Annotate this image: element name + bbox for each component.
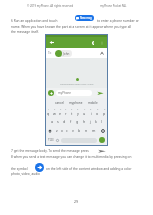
staticText: g <box>76 119 79 124</box>
button[interactable]: Shift <box>48 129 52 133</box>
staticText: on the left side of the content window a… <box>46 167 132 171</box>
button[interactable]: Emoji <box>56 139 59 142</box>
staticText: conversation with MMS / Pass <box>60 82 94 85</box>
button[interactable]: a <box>51 119 54 124</box>
staticText: New msg <box>80 16 92 20</box>
staticText: 4 <box>65 108 67 111</box>
button[interactable]: d <box>63 119 66 124</box>
button[interactable]: 6 <box>77 108 79 116</box>
staticText: f <box>70 119 72 124</box>
staticText: 0 <box>104 108 106 111</box>
other: Call <box>92 41 96 45</box>
staticText: e <box>59 111 62 116</box>
staticText: 6 Run an application and touch <box>11 19 58 23</box>
staticText: k <box>95 119 97 124</box>
button[interactable]: Attach <box>48 90 54 96</box>
button[interactable]: n <box>85 128 88 133</box>
button[interactable]: h <box>83 119 86 124</box>
button[interactable]: mobile <box>88 101 98 105</box>
button[interactable]: myphone <box>69 101 83 105</box>
button[interactable]: cancel <box>55 101 64 105</box>
staticText: © 2019 myPhone. All rights reserved <box>27 4 74 8</box>
staticText: name. When you have known the part at a … <box>11 25 132 29</box>
button[interactable]: ?123 <box>48 138 54 142</box>
button[interactable]: l <box>101 119 102 124</box>
button[interactable]: 9 <box>96 108 99 116</box>
staticText: l <box>101 119 102 124</box>
staticText: i <box>91 111 92 116</box>
button[interactable]: b <box>78 128 81 133</box>
staticText: s <box>57 119 59 124</box>
other: More options <box>100 41 104 45</box>
button[interactable]: 5 <box>71 108 73 116</box>
button[interactable]: c <box>66 128 68 133</box>
button[interactable]: v <box>72 128 74 133</box>
button[interactable]: 8 <box>90 108 92 116</box>
staticText: r <box>65 111 67 116</box>
button[interactable]: Backspace <box>101 129 105 133</box>
staticText: 3 <box>60 108 62 111</box>
button[interactable]: 2 <box>53 108 56 116</box>
button[interactable]: 1 <box>47 108 50 116</box>
staticText: 8 when you send a text message you can c… <box>11 155 132 159</box>
other: Back <box>49 40 54 45</box>
button[interactable]: g <box>76 119 79 124</box>
button[interactable]: f <box>70 119 72 124</box>
button[interactable]: New message <box>75 15 94 21</box>
staticText: to enter a phone number or <box>97 19 139 23</box>
staticText: o <box>96 111 99 116</box>
staticText: 6 <box>77 108 79 111</box>
button[interactable]: z <box>56 128 58 133</box>
button[interactable]: k <box>95 119 97 124</box>
staticText: a <box>51 119 54 124</box>
button[interactable]: s <box>57 119 59 124</box>
staticText: John <box>63 52 70 56</box>
staticText: photo, video, audio <box>11 172 40 176</box>
other: Add contact <box>100 51 105 56</box>
staticText: 1 <box>48 108 50 111</box>
staticText: 2 <box>54 108 56 111</box>
staticText: 5 <box>71 108 73 111</box>
staticText: j <box>90 119 91 124</box>
staticText: 8 <box>90 108 92 111</box>
staticText: p <box>103 111 106 116</box>
staticText: To <box>48 51 52 55</box>
button[interactable]: Enter <box>99 137 105 143</box>
staticText: u <box>83 111 86 116</box>
staticText: w <box>53 111 56 116</box>
button[interactable]: 7 <box>83 108 86 116</box>
button[interactable]: j <box>90 119 91 124</box>
staticText: d <box>63 119 66 124</box>
staticText: y <box>77 111 79 116</box>
button[interactable]: Send <box>97 90 104 97</box>
staticText: h <box>83 119 86 124</box>
staticText: myPhone Pocket PAL <box>100 4 127 8</box>
staticText: q <box>47 111 50 116</box>
staticText: 29 <box>74 199 79 204</box>
button[interactable]: x <box>61 128 63 133</box>
staticText: 9 <box>97 108 99 111</box>
staticText: t <box>71 111 73 116</box>
staticText: 7 get the message body. To send the mess… <box>11 149 89 153</box>
staticText: 7 <box>84 108 86 111</box>
button[interactable]: m <box>92 128 96 133</box>
staticText: the symbol <box>11 167 28 171</box>
staticText: the message itself. <box>11 30 39 34</box>
button[interactable]: John <box>55 50 72 57</box>
staticText: myPhone <box>58 91 71 95</box>
button[interactable]: 4 <box>65 108 67 116</box>
button[interactable]: 3 <box>59 108 62 116</box>
button[interactable]: 0 <box>103 108 106 116</box>
